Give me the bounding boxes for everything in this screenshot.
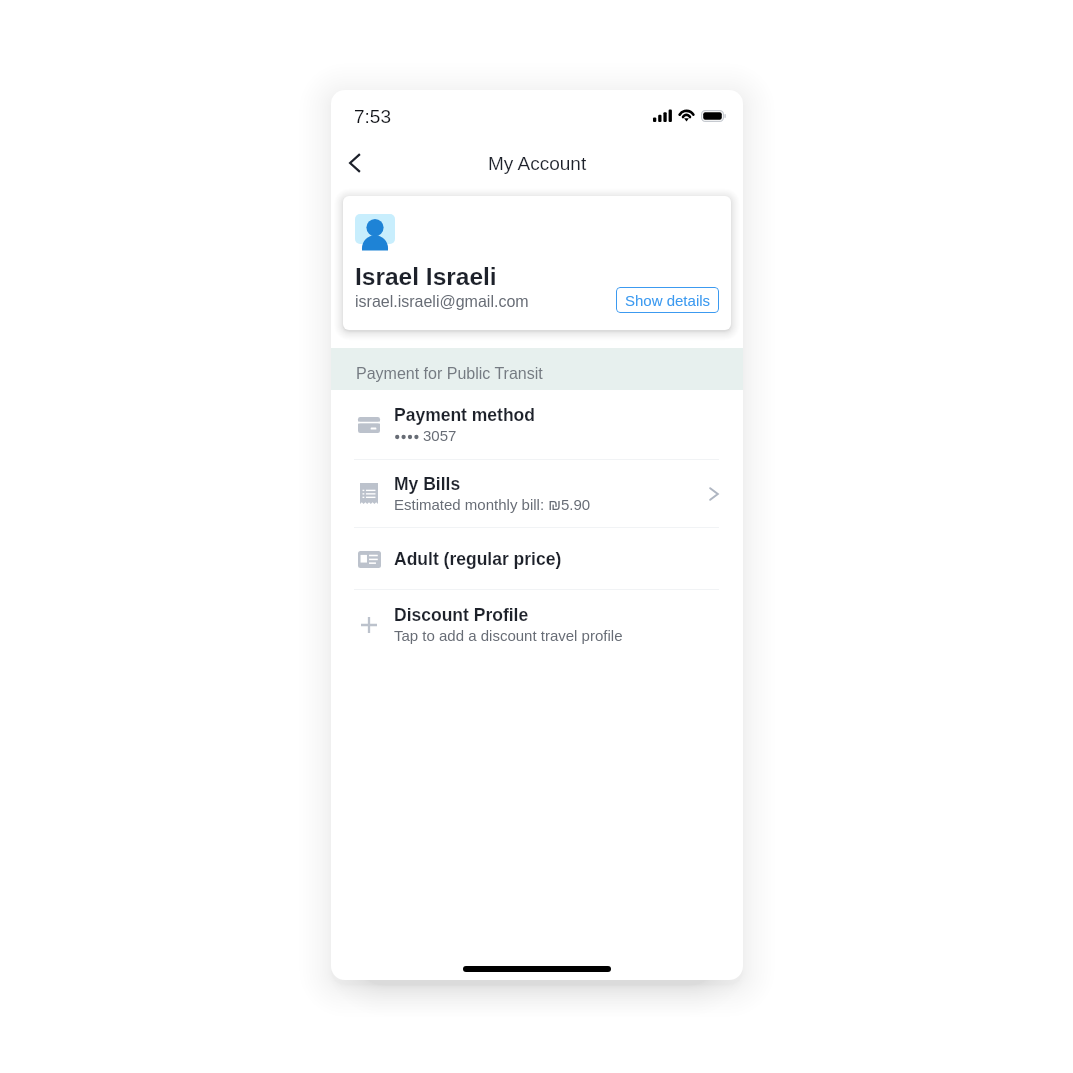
button[interactable]: Payment method: [331, 390, 743, 459]
staticText: Payment for Public Transit: [356, 365, 543, 383]
button[interactable]: My Bills: [331, 460, 743, 527]
button[interactable]: Back: [333, 141, 377, 185]
staticText: 7:53: [354, 106, 391, 127]
staticText: Israel Israeli: [355, 263, 497, 290]
staticText: Estimated monthly bill: ₪5.90: [394, 496, 591, 513]
staticText: Adult (regular price): [394, 549, 562, 569]
button[interactable]: Show details: [616, 287, 719, 313]
staticText: 3057: [423, 427, 457, 444]
staticText: My Bills: [394, 474, 461, 494]
staticText: Tap to add a discount travel profile: [394, 627, 623, 644]
staticText: Payment method: [394, 405, 535, 425]
staticText: My Account: [488, 153, 587, 174]
button[interactable]: Discount Profile: [331, 590, 743, 659]
staticText: Show details: [625, 292, 711, 309]
staticText: israel.israeli@gmail.com: [355, 293, 529, 311]
button[interactable]: Adult (regular price): [331, 528, 743, 589]
staticText: Discount Profile: [394, 605, 529, 625]
